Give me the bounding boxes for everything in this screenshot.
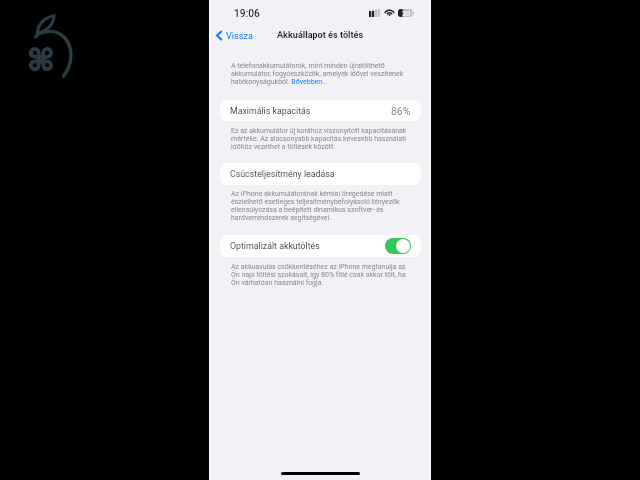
staticText: 19:06 [234, 8, 260, 20]
staticText: Optimalizált akkutöltés [230, 241, 320, 251]
staticText: Ez az akkumulátor új korához viszonyítot… [231, 127, 413, 151]
staticText: Akkuállapot és töltés [277, 30, 364, 41]
staticText: Az akkuavulás csökkentéséhez az iPhone m… [231, 263, 413, 287]
staticText: Az iPhone akkumulátorának kémiai öregedé… [231, 190, 413, 222]
staticText: 86% [391, 105, 411, 117]
button[interactable]: Optimalizált akkutöltés [220, 235, 421, 257]
button[interactable]: Maximális kapacitás [220, 100, 421, 121]
button[interactable]: Vissza [213, 27, 259, 42]
staticText: Maximális kapacitás [230, 106, 311, 116]
button[interactable]: Optimalizált akkutöltés [385, 238, 411, 254]
staticText: Csúcsteljesítmény leadása [230, 169, 335, 179]
staticText: A telefonakkumulátorok, mint minden újra… [231, 62, 413, 86]
staticText: 33 [402, 9, 411, 17]
staticText: Vissza [226, 31, 253, 42]
button[interactable]: Csúcsteljesítmény leadása [220, 163, 421, 185]
